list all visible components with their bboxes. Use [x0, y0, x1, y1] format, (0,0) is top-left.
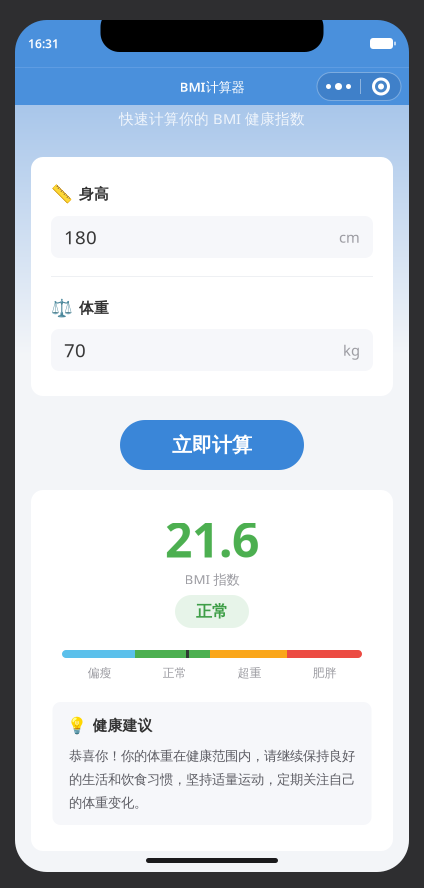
staticText: 正常 — [196, 602, 228, 621]
staticText: BMI 指数 — [184, 570, 239, 588]
staticText: 16:31 — [28, 35, 59, 51]
staticText: 📏 — [51, 184, 73, 204]
staticText: 21.6 — [165, 507, 259, 571]
button[interactable]: 立即计算 — [120, 420, 304, 470]
staticText: 体重 — [79, 299, 109, 317]
staticText: kg — [343, 340, 360, 360]
staticText: 180 — [64, 225, 97, 249]
staticText: 70 — [64, 338, 86, 362]
button[interactable]: Mini program menu — [317, 72, 401, 100]
staticText: 💡 — [66, 716, 86, 735]
staticText: 超重 — [237, 666, 261, 680]
staticText: 正常 — [162, 666, 186, 680]
staticText: 快速计算你的 BMI 健康指数 — [119, 109, 305, 128]
staticText: 恭喜你！你的体重在健康范围内，请继续保持良好的生活和饮食习惯，坚持适量运动，定期… — [69, 748, 355, 811]
staticText: cm — [339, 227, 360, 247]
staticText: 健康建议 — [92, 716, 152, 734]
staticText: 身高 — [79, 185, 109, 203]
staticText: 肥胖 — [312, 666, 336, 680]
staticText: 立即计算 — [172, 433, 252, 457]
staticText: ⚖️ — [51, 298, 73, 318]
staticText: 偏瘦 — [87, 666, 111, 680]
staticText: BMI计算器 — [179, 78, 244, 95]
